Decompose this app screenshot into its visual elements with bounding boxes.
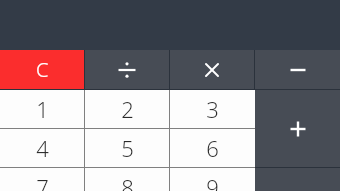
staticText: 8 bbox=[121, 172, 134, 191]
staticText: 5 bbox=[121, 133, 134, 163]
button[interactable]: 6 bbox=[170, 129, 255, 167]
button[interactable]: C bbox=[0, 50, 84, 89]
staticText: 1 bbox=[36, 94, 49, 124]
button[interactable]: 5 bbox=[85, 129, 169, 167]
button[interactable]: 4 bbox=[0, 129, 84, 167]
staticText: 7 bbox=[36, 172, 49, 191]
staticText: C bbox=[36, 56, 49, 83]
button[interactable]: Plus bbox=[255, 90, 340, 167]
button[interactable]: 7 bbox=[0, 168, 84, 191]
button[interactable]: 9 bbox=[170, 168, 255, 191]
button[interactable]: 2 bbox=[85, 90, 169, 128]
button[interactable]: 8 bbox=[85, 168, 169, 191]
button[interactable]: Minus bbox=[255, 50, 340, 89]
staticText: 9 bbox=[206, 172, 219, 191]
button[interactable]: Multiply bbox=[170, 50, 254, 89]
staticText: 6 bbox=[206, 133, 219, 163]
staticText: 2 bbox=[121, 94, 134, 124]
staticText: 3 bbox=[206, 94, 219, 124]
button[interactable]: 3 bbox=[170, 90, 255, 128]
staticText: 4 bbox=[36, 133, 49, 163]
button[interactable]: Divide bbox=[85, 50, 169, 89]
button[interactable]: 1 bbox=[0, 90, 84, 128]
